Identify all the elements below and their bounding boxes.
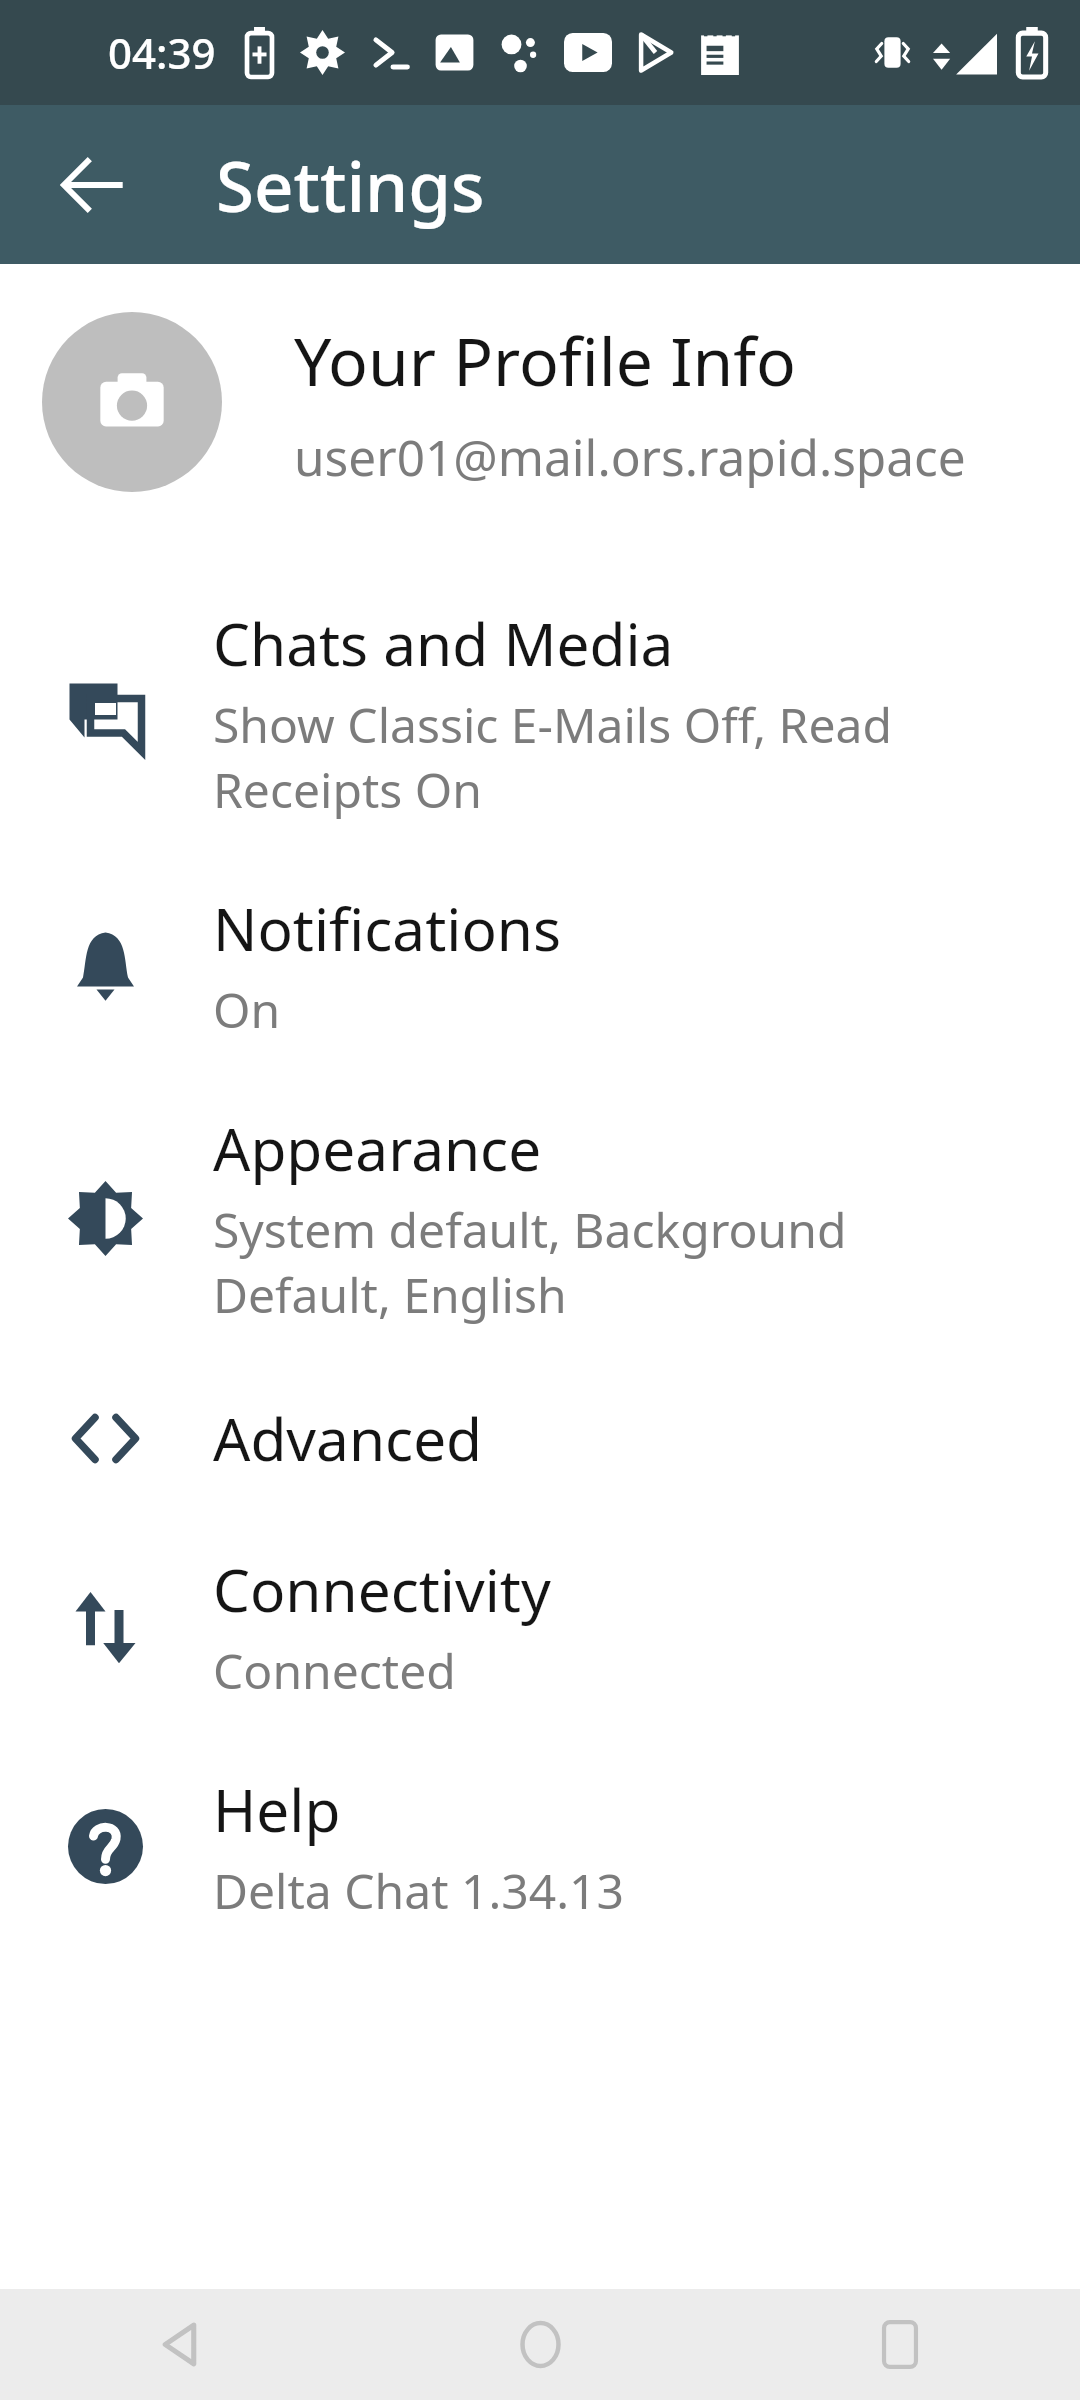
staticText: Appearance <box>213 1108 542 1188</box>
staticText: 04:39 <box>108 24 216 81</box>
button[interactable]: Advanced <box>0 1360 1080 1516</box>
button[interactable]: Chats and Media <box>0 570 1080 855</box>
button[interactable]: Appearance <box>0 1075 1080 1360</box>
staticText: Connected <box>213 1638 456 1703</box>
staticText: Show Classic E-Mails Off, Read Receipts … <box>213 692 1032 822</box>
staticText: Help <box>213 1769 341 1849</box>
button[interactable]: Recent apps <box>720 2289 1080 2400</box>
staticText: Settings <box>216 138 485 232</box>
staticText: Delta Chat 1.34.13 <box>213 1858 624 1923</box>
button[interactable]: Your Profile Info <box>0 264 1080 522</box>
staticText: Connectivity <box>213 1549 551 1629</box>
button[interactable]: Connectivity <box>0 1516 1080 1736</box>
staticText: System default, Background Default, Engl… <box>213 1197 1032 1327</box>
button[interactable]: Home <box>360 2289 720 2400</box>
staticText: On <box>213 977 281 1042</box>
staticText: Chats and Media <box>213 603 674 683</box>
button[interactable]: Back <box>24 116 162 254</box>
staticText: Advanced <box>213 1398 483 1478</box>
button[interactable]: Notifications <box>0 855 1080 1075</box>
staticText: Notifications <box>213 888 561 968</box>
staticText: user01@mail.ors.rapid.space <box>294 423 966 490</box>
button[interactable]: Back <box>0 2289 360 2400</box>
staticText: Your Profile Info <box>294 315 796 405</box>
button[interactable]: Help <box>0 1736 1080 1956</box>
